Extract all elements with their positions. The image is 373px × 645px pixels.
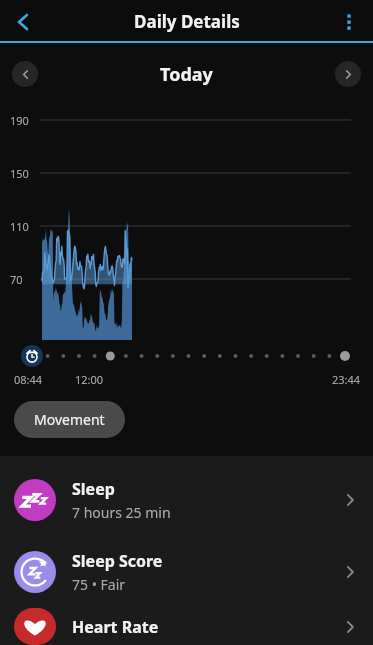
staticText: 150 — [10, 166, 29, 181]
staticText: Movement — [34, 410, 105, 429]
staticText: Today — [160, 62, 213, 87]
button[interactable]: More options — [331, 4, 367, 40]
button[interactable]: Heart Rate — [0, 608, 373, 645]
button[interactable]: Next day — [335, 61, 361, 87]
button[interactable]: Movement — [14, 401, 125, 438]
button[interactable]: Sleep — [0, 464, 373, 536]
staticText: 7 hours 25 min — [72, 503, 171, 522]
staticText: 190 — [10, 113, 29, 128]
staticText: 08:44 — [14, 372, 43, 387]
staticText: 75 • Fair — [72, 575, 126, 594]
staticText: 12:00 — [75, 372, 104, 387]
staticText: Heart Rate — [72, 616, 159, 638]
button[interactable]: Previous day — [12, 61, 38, 87]
button[interactable]: Sleep Score — [0, 536, 373, 608]
staticText: 110 — [10, 219, 29, 234]
button[interactable]: Alarm — [21, 345, 43, 367]
staticText: 70 — [10, 272, 23, 287]
staticText: 23:44 — [332, 372, 361, 387]
button[interactable]: Back — [5, 4, 41, 40]
staticText: Daily Details — [134, 10, 240, 33]
staticText: Sleep Score — [72, 550, 163, 572]
staticText: Sleep — [72, 478, 115, 500]
